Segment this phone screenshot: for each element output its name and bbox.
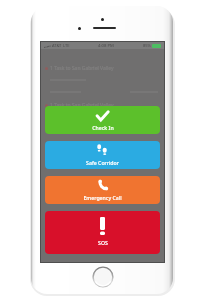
staticText: Emergency Call bbox=[83, 194, 122, 201]
button[interactable]: 1 Task to San Gabriel Valley bbox=[45, 65, 160, 93]
button[interactable]: Emergency Call bbox=[45, 176, 160, 204]
button[interactable]: Check In bbox=[45, 106, 160, 134]
button[interactable]: Home bbox=[92, 266, 114, 288]
staticText: 1 Task to San Gabriel Valley bbox=[50, 65, 114, 72]
staticText: LTE bbox=[63, 43, 70, 48]
staticText: 85% bbox=[143, 43, 151, 48]
staticText: 1 Task to San Gabriel Valley bbox=[50, 102, 114, 109]
button[interactable]: Safe Corridor bbox=[45, 141, 160, 169]
staticText: SOS bbox=[98, 239, 108, 246]
button[interactable]: SOS bbox=[45, 211, 160, 254]
staticText: Check In bbox=[92, 124, 114, 131]
button[interactable]: 1 Task to San Gabriel Valley bbox=[45, 102, 160, 130]
staticText: AT&T bbox=[52, 43, 62, 48]
staticText: 4:08 PM bbox=[98, 43, 114, 49]
staticText: Safe Corridor bbox=[86, 159, 119, 166]
